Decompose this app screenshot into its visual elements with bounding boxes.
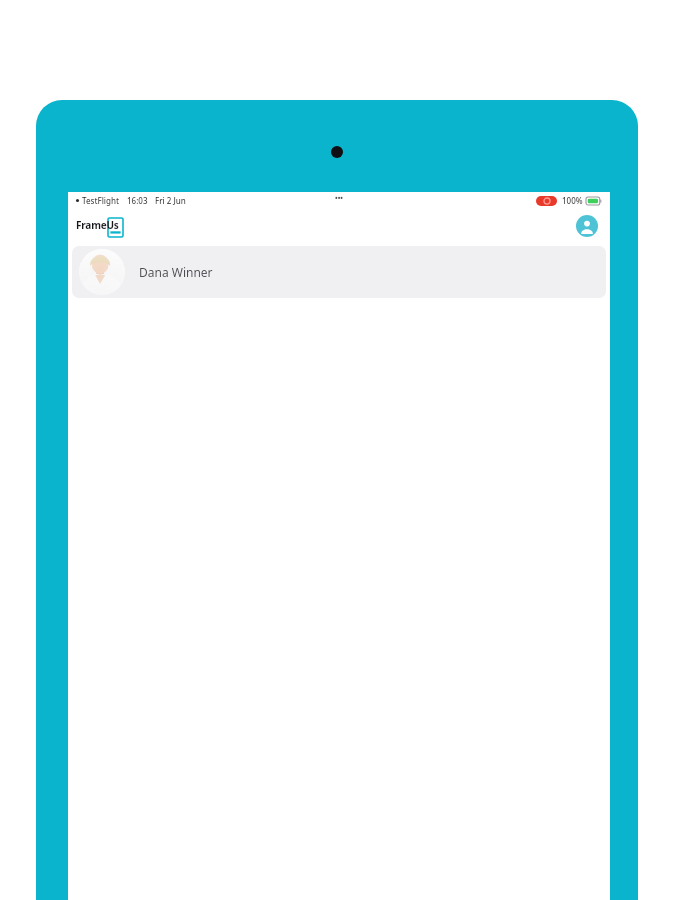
staticText: Fri 2 Jun (155, 195, 186, 206)
staticText: 100% (562, 195, 583, 206)
button[interactable]: FrameUs (76, 213, 124, 239)
staticText: Dana Winner (139, 264, 213, 280)
button[interactable]: Dana Winner (72, 246, 606, 298)
staticText: FrameUs (76, 218, 119, 232)
staticText: 16:03 (127, 195, 148, 206)
button[interactable]: Profile (575, 214, 599, 238)
staticText: ••• (335, 194, 343, 204)
staticText: TestFlight (82, 195, 120, 206)
